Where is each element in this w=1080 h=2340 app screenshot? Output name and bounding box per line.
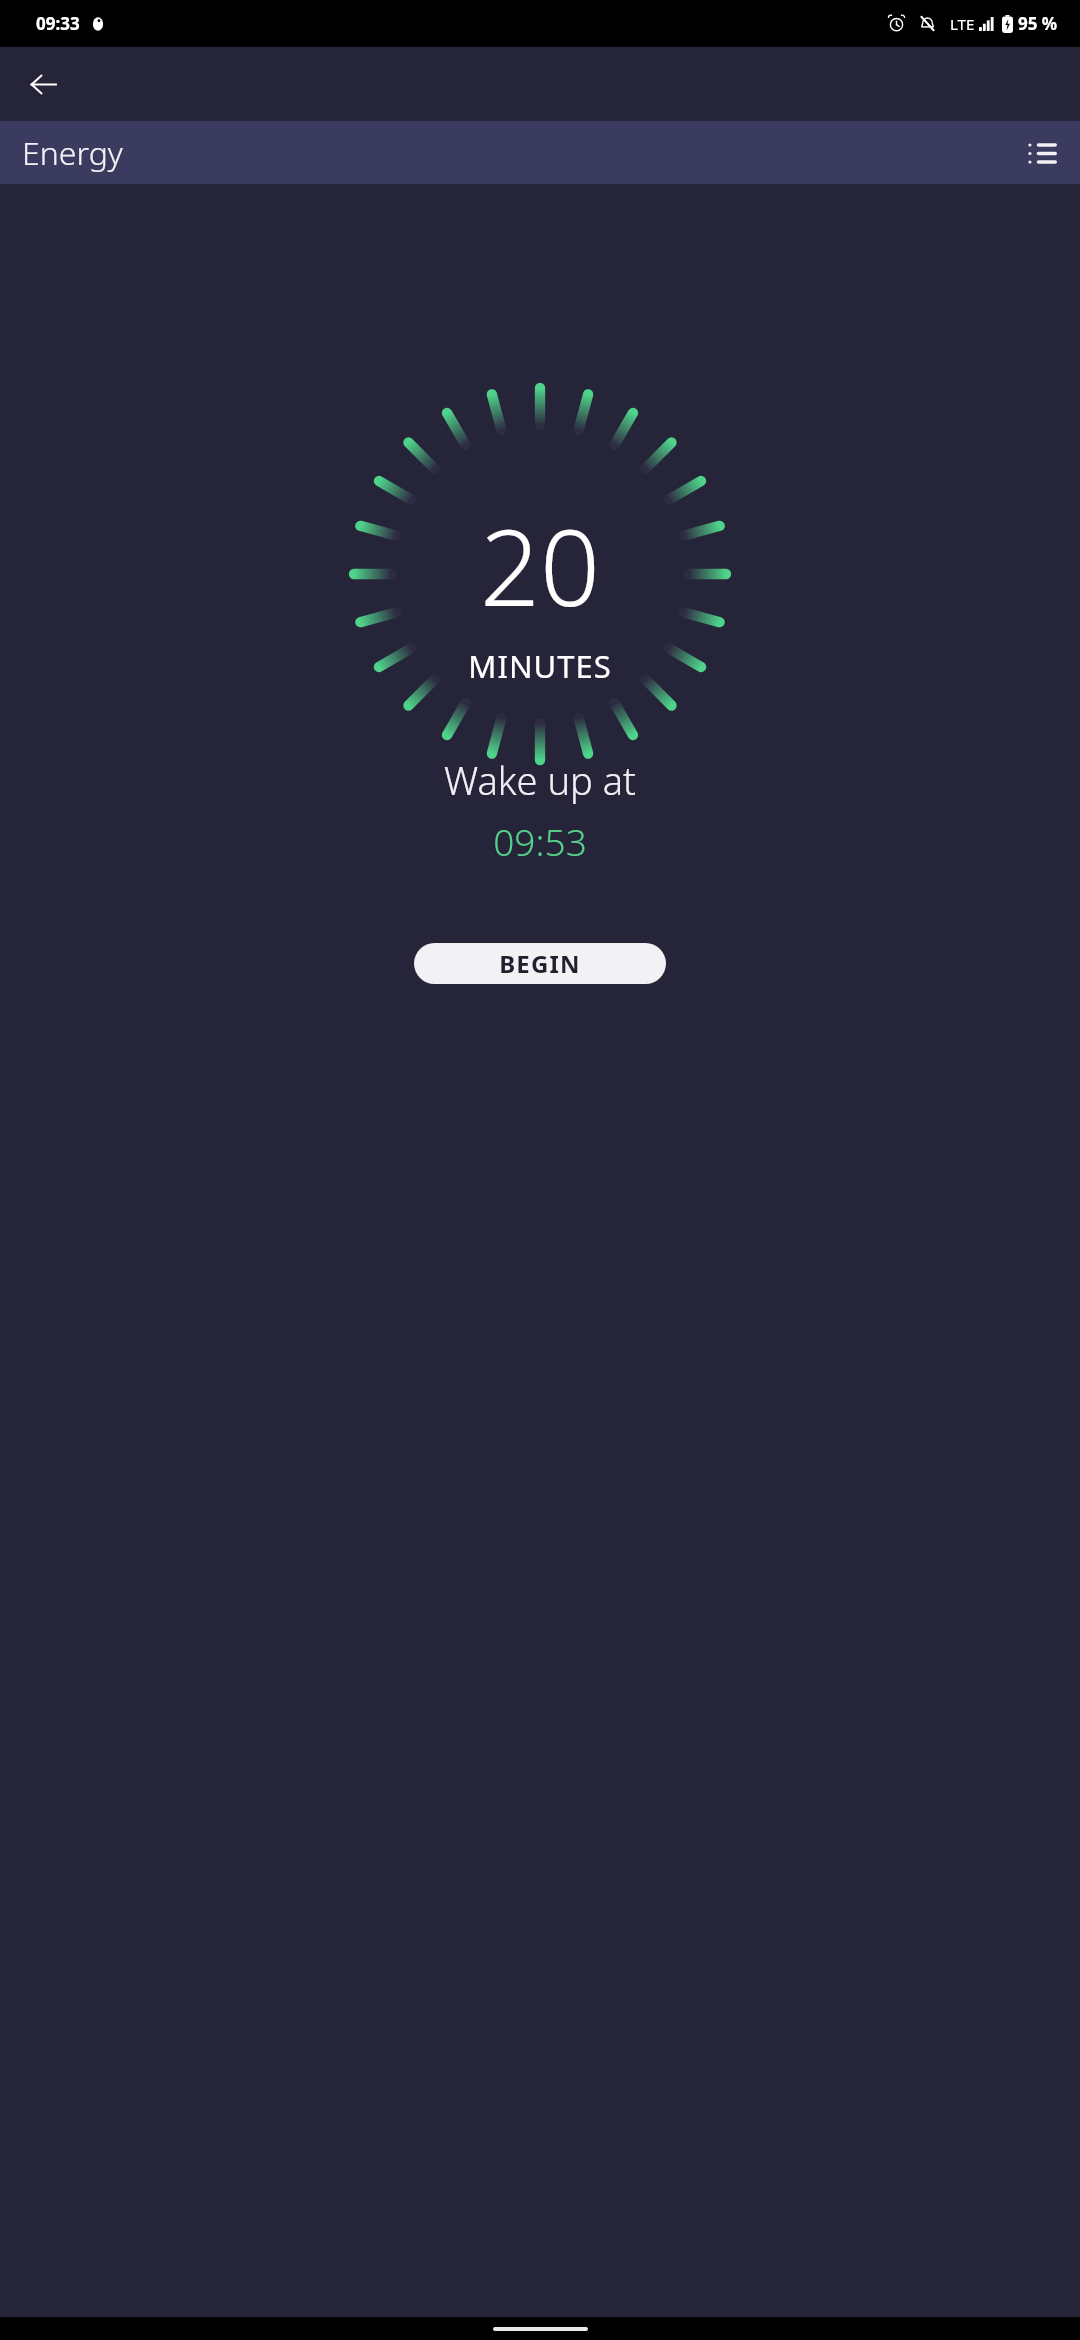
staticText: Energy — [22, 131, 123, 175]
staticText: MINUTES — [468, 645, 612, 687]
staticText: 09:53 — [493, 816, 587, 866]
button[interactable]: Back — [17, 58, 69, 110]
button[interactable]: Menu — [1018, 129, 1066, 177]
staticText: 09:33 — [36, 12, 80, 35]
button[interactable]: BEGIN — [414, 943, 666, 984]
staticText: Wake up at — [444, 754, 636, 806]
staticText: 20 — [480, 494, 600, 637]
staticText: BEGIN — [499, 947, 581, 980]
staticText: 95 % — [1018, 12, 1058, 35]
staticText: LTE — [950, 14, 975, 34]
